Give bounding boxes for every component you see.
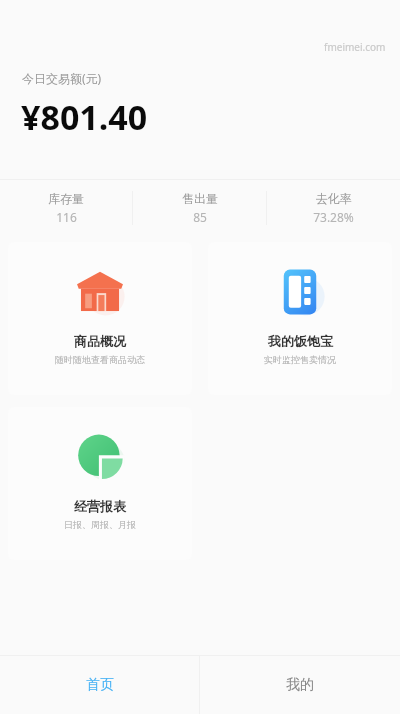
other: 我的饭饱宝 (272, 264, 328, 320)
other: 商品概况 (72, 264, 128, 320)
button[interactable]: 商品概况 (8, 242, 192, 395)
staticText: 今日交易额(元) (22, 70, 102, 86)
staticText: fmeimei.com (324, 40, 386, 54)
button[interactable]: 库存量 (0, 185, 132, 231)
button[interactable]: 售出量 (133, 185, 266, 231)
other: 经营报表 (72, 429, 128, 485)
button[interactable]: 我的 (200, 656, 400, 714)
button[interactable]: 首页 (0, 656, 199, 714)
staticText: 我的 (286, 676, 314, 694)
staticText: 日报、周报、月报 (64, 519, 136, 530)
button[interactable]: 我的饭饱宝 (208, 242, 392, 395)
staticText: 库存量 (48, 191, 84, 206)
staticText: 商品概况 (74, 333, 126, 349)
staticText: 首页 (86, 676, 114, 694)
button[interactable]: 去化率 (267, 185, 400, 231)
staticText: ¥801.40 (21, 94, 148, 140)
staticText: 116 (56, 209, 77, 225)
button[interactable]: 经营报表 (8, 407, 192, 560)
staticText: 随时随地查看商品动态 (55, 354, 145, 365)
staticText: 85 (193, 209, 207, 225)
staticText: 去化率 (316, 191, 352, 206)
staticText: 我的饭饱宝 (268, 333, 333, 349)
staticText: 实时监控售卖情况 (264, 354, 336, 365)
staticText: 售出量 (182, 191, 218, 206)
staticText: 73.28% (313, 209, 354, 225)
staticText: 经营报表 (74, 498, 126, 514)
